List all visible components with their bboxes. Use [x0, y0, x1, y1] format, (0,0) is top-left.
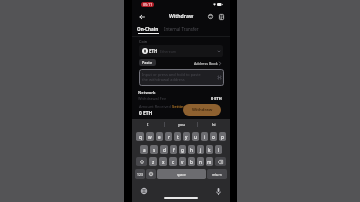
- button[interactable]: y: [183, 132, 190, 141]
- button[interactable]: On-Chain: [137, 26, 159, 34]
- staticText: y: [185, 134, 188, 140]
- button[interactable]: Emoji: [146, 169, 156, 179]
- button[interactable]: Transaction history: [216, 11, 227, 22]
- button[interactable]: o: [210, 132, 217, 141]
- staticText: v: [181, 159, 184, 165]
- button[interactable]: x: [159, 157, 167, 166]
- button[interactable]: k: [206, 145, 213, 154]
- button[interactable]: Withdraw: [183, 104, 221, 116]
- button[interactable]: a: [140, 145, 148, 154]
- staticText: i: [204, 134, 206, 140]
- staticText: 123: [137, 172, 143, 177]
- staticText: p: [221, 134, 224, 140]
- staticText: e: [158, 134, 161, 140]
- staticText: Amount Received: [139, 104, 171, 109]
- button[interactable]: z: [149, 157, 157, 166]
- staticText: z: [152, 159, 155, 165]
- button[interactable]: return: [207, 169, 227, 179]
- staticText: Withdraw: [169, 13, 194, 20]
- staticText: Ethereum: [160, 49, 177, 54]
- button[interactable]: q: [136, 132, 144, 141]
- button[interactable]: Address Book: [194, 61, 221, 66]
- button[interactable]: I: [132, 119, 164, 130]
- staticText: Withdrawal Fee: [138, 96, 167, 101]
- staticText: t: [177, 134, 179, 140]
- staticText: c: [172, 159, 175, 165]
- staticText: n: [199, 159, 202, 165]
- staticText: ETH: [149, 48, 158, 54]
- button[interactable]: Change keyboard: [140, 187, 148, 195]
- staticText: On-Chain: [137, 26, 159, 32]
- button[interactable]: e: [156, 132, 163, 141]
- staticText: I: [147, 122, 149, 127]
- staticText: f: [173, 147, 175, 153]
- staticText: Withdraw: [192, 107, 213, 113]
- staticText: l: [218, 147, 220, 153]
- staticText: Address Book: [194, 61, 218, 66]
- button[interactable]: b: [188, 157, 195, 166]
- staticText: q: [139, 134, 142, 140]
- staticText: 05:11: [143, 2, 153, 7]
- other: Delete: [218, 160, 223, 164]
- staticText: Network: [138, 90, 156, 95]
- button[interactable]: j: [197, 145, 204, 154]
- button[interactable]: g: [179, 145, 186, 154]
- button[interactable]: Back: [136, 11, 147, 22]
- other: Shift: [140, 160, 144, 164]
- staticText: h: [190, 147, 193, 153]
- staticText: Coin: [139, 39, 148, 44]
- button[interactable]: h: [188, 145, 195, 154]
- staticText: u: [194, 134, 197, 140]
- button[interactable]: space: [157, 169, 206, 179]
- button[interactable]: i: [201, 132, 208, 141]
- button[interactable]: t: [174, 132, 181, 141]
- button[interactable]: Input or press and hold to paste the wit…: [139, 69, 224, 86]
- staticText: o: [212, 134, 215, 140]
- staticText: g: [181, 147, 184, 153]
- staticText: you: [178, 122, 185, 127]
- button[interactable]: v: [179, 157, 186, 166]
- button[interactable]: d: [160, 145, 168, 154]
- staticText: a: [143, 147, 146, 153]
- button[interactable]: Dictate: [214, 187, 222, 195]
- staticText: k: [208, 147, 211, 153]
- staticText: m: [207, 159, 212, 165]
- staticText: r: [168, 134, 170, 140]
- staticText: d: [163, 147, 166, 153]
- button[interactable]: you: [165, 119, 197, 130]
- button[interactable]: s: [150, 145, 158, 154]
- staticText: s: [153, 147, 156, 153]
- button[interactable]: hi: [198, 119, 230, 130]
- staticText: b: [190, 159, 193, 165]
- staticText: j: [200, 147, 202, 153]
- button[interactable]: Shift: [136, 157, 147, 166]
- button[interactable]: n: [197, 157, 204, 166]
- staticText: Input or press and hold to paste the wit…: [142, 72, 201, 82]
- button[interactable]: Help: [205, 11, 216, 22]
- staticText: space: [177, 172, 186, 176]
- button[interactable]: c: [169, 157, 177, 166]
- staticText: x: [162, 159, 165, 165]
- button[interactable]: Internal Transfer: [164, 26, 199, 32]
- staticText: hi: [212, 122, 216, 127]
- staticText: 0 ETH: [139, 110, 153, 117]
- staticText: w: [148, 134, 152, 140]
- staticText: return: [212, 172, 222, 176]
- button[interactable]: u: [192, 132, 199, 141]
- button[interactable]: Paste: [139, 59, 156, 66]
- staticText: Setting: [172, 104, 186, 109]
- button[interactable]: Delete: [215, 157, 226, 166]
- button[interactable]: r: [165, 132, 172, 141]
- button[interactable]: m: [206, 157, 213, 166]
- staticText: 0 ETH: [211, 96, 222, 101]
- button[interactable]: p: [219, 132, 226, 141]
- button[interactable]: f: [170, 145, 177, 154]
- button[interactable]: l: [215, 145, 222, 154]
- button[interactable]: w: [146, 132, 154, 141]
- staticText: Paste: [142, 60, 153, 65]
- button[interactable]: ETH: [139, 45, 223, 57]
- button[interactable]: 123: [135, 169, 145, 179]
